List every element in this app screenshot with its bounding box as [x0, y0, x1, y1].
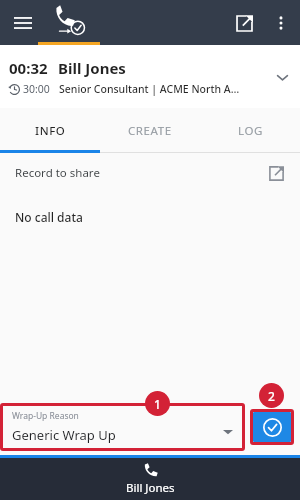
staticText: 2 [268, 388, 275, 404]
button[interactable]: CREATE [100, 108, 200, 153]
other: Open recording [263, 160, 289, 186]
button[interactable]: LOG [200, 108, 300, 153]
button[interactable]: Wrap-Up Reason [0, 403, 245, 451]
button[interactable]: INFO [0, 108, 100, 153]
staticText: Generic Wrap Up [12, 426, 116, 444]
button[interactable]: Active call [38, 0, 100, 45]
staticText: 30:00 [23, 82, 50, 96]
staticText: Bill Jones [58, 58, 126, 78]
staticText: LOG [238, 123, 263, 139]
staticText: INFO [35, 123, 66, 139]
staticText: Wrap-Up Reason [12, 410, 79, 422]
button[interactable]: More options [264, 6, 298, 40]
staticText: Bill Jones [126, 480, 175, 496]
staticText: No call data [15, 209, 83, 225]
button[interactable]: Record to share [0, 153, 300, 193]
button[interactable]: 00:32 [0, 45, 300, 108]
staticText: 1 [154, 396, 161, 412]
staticText: CREATE [128, 123, 172, 139]
button[interactable]: Confirm wrap-up [253, 412, 291, 442]
staticText: Record to share [15, 165, 100, 181]
button[interactable]: Open in new window [224, 3, 264, 43]
button[interactable]: Menu [4, 4, 42, 42]
staticText: Senior Consultant | ACME North A… [59, 82, 240, 96]
button[interactable]: Expand details [264, 59, 300, 95]
staticText: 00:32 [9, 58, 48, 78]
button[interactable]: Bill Jones [0, 458, 300, 500]
